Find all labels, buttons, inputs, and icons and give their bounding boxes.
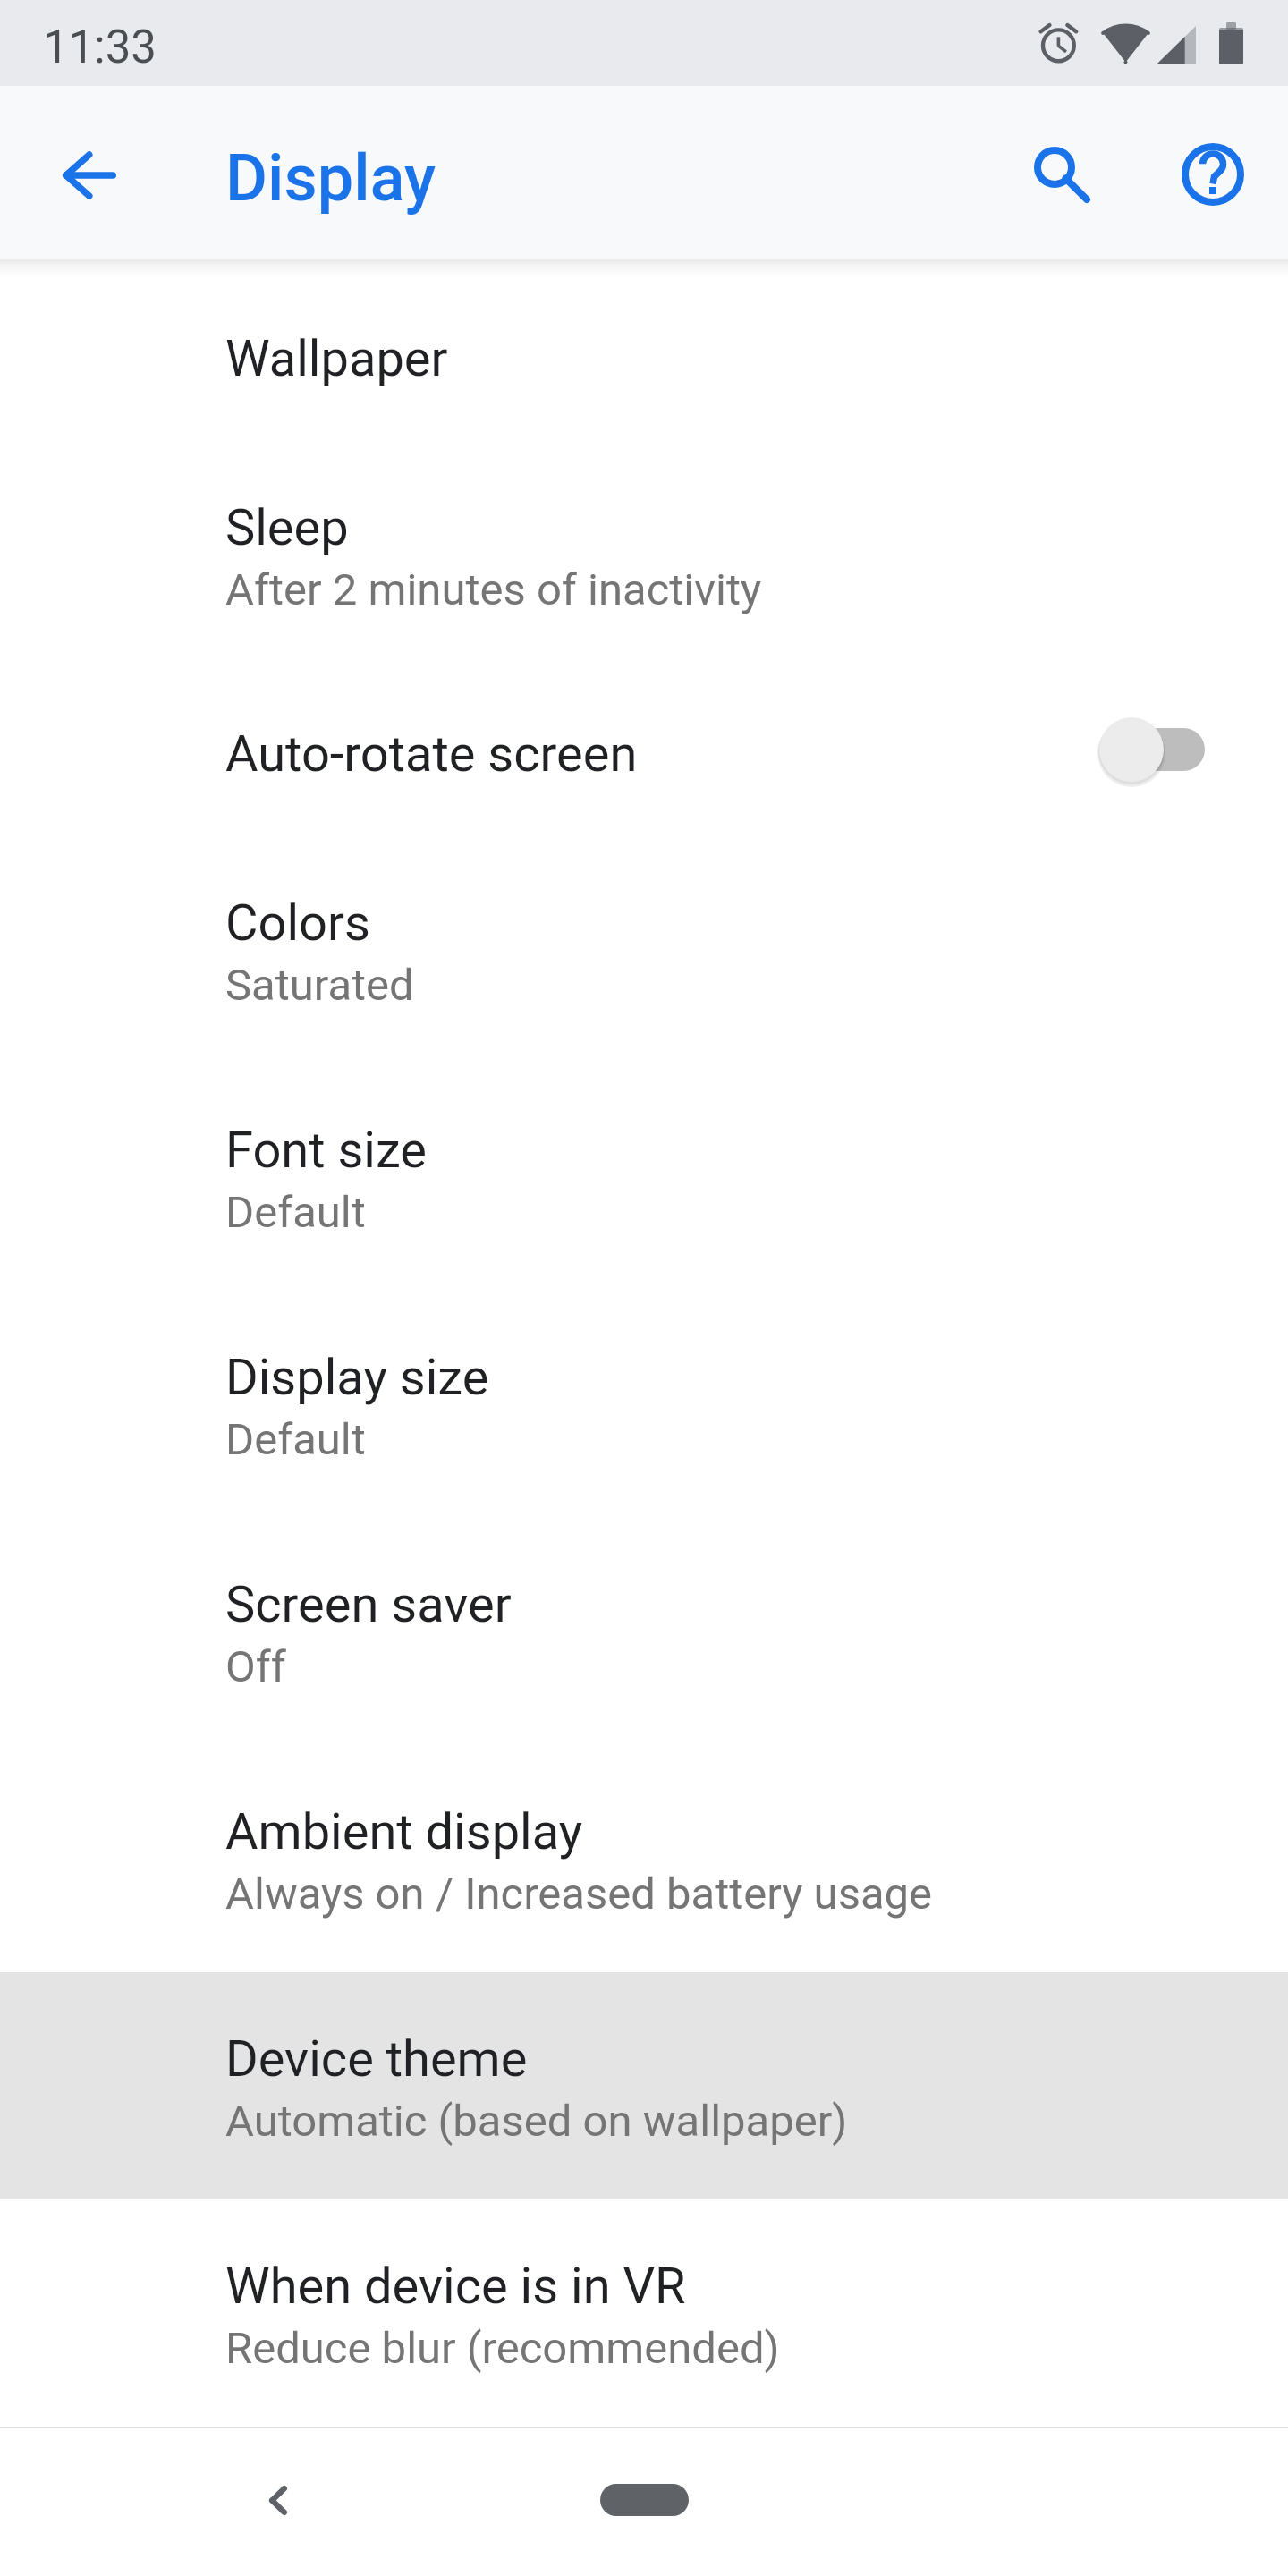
staticText: Reduce blur (recommended) [225, 2323, 780, 2374]
button[interactable]: Search [1007, 121, 1114, 228]
staticText: Default [225, 1414, 366, 1465]
staticText: Screen saver [225, 1575, 512, 1634]
button[interactable]: Colors [0, 836, 1288, 1063]
staticText: When device is in VR [225, 2257, 686, 2316]
button[interactable]: Font size [0, 1063, 1288, 1291]
staticText: Font size [225, 1121, 428, 1180]
staticText: Display size [225, 1348, 489, 1407]
button[interactable]: Back [216, 2437, 341, 2563]
button[interactable]: Sleep [0, 441, 1288, 668]
button[interactable]: Auto-rotate screen [0, 668, 1288, 836]
staticText: 11:33 [43, 21, 157, 74]
button[interactable]: Help [1159, 121, 1267, 228]
button[interactable]: When device is in VR [0, 2199, 1288, 2427]
staticText: Device theme [225, 2029, 528, 2089]
button[interactable]: Home [546, 2455, 742, 2545]
staticText: Off [225, 1641, 286, 1692]
staticText: Always on / Increased battery usage [225, 1868, 933, 1919]
staticText: Ambient display [225, 1802, 583, 1861]
button[interactable]: Ambient display [0, 1745, 1288, 1972]
button[interactable]: Auto-rotate screen, off [1072, 682, 1239, 817]
staticText: Colors [225, 894, 370, 953]
button[interactable]: Wallpaper [0, 273, 1288, 441]
staticText: Wallpaper [225, 329, 448, 388]
staticText: After 2 minutes of inactivity [225, 564, 762, 615]
staticText: Automatic (based on wallpaper) [225, 2096, 848, 2147]
staticText: Sleep [225, 498, 349, 557]
button[interactable]: Screen saver [0, 1518, 1288, 1745]
staticText: Default [225, 1187, 366, 1238]
staticText: Auto-rotate screen [225, 724, 638, 784]
button[interactable]: Navigate up [35, 121, 142, 228]
staticText: Saturated [225, 960, 414, 1011]
button[interactable]: Device theme [0, 1972, 1288, 2199]
staticText: Display [225, 140, 436, 216]
button[interactable]: Display size [0, 1291, 1288, 1518]
